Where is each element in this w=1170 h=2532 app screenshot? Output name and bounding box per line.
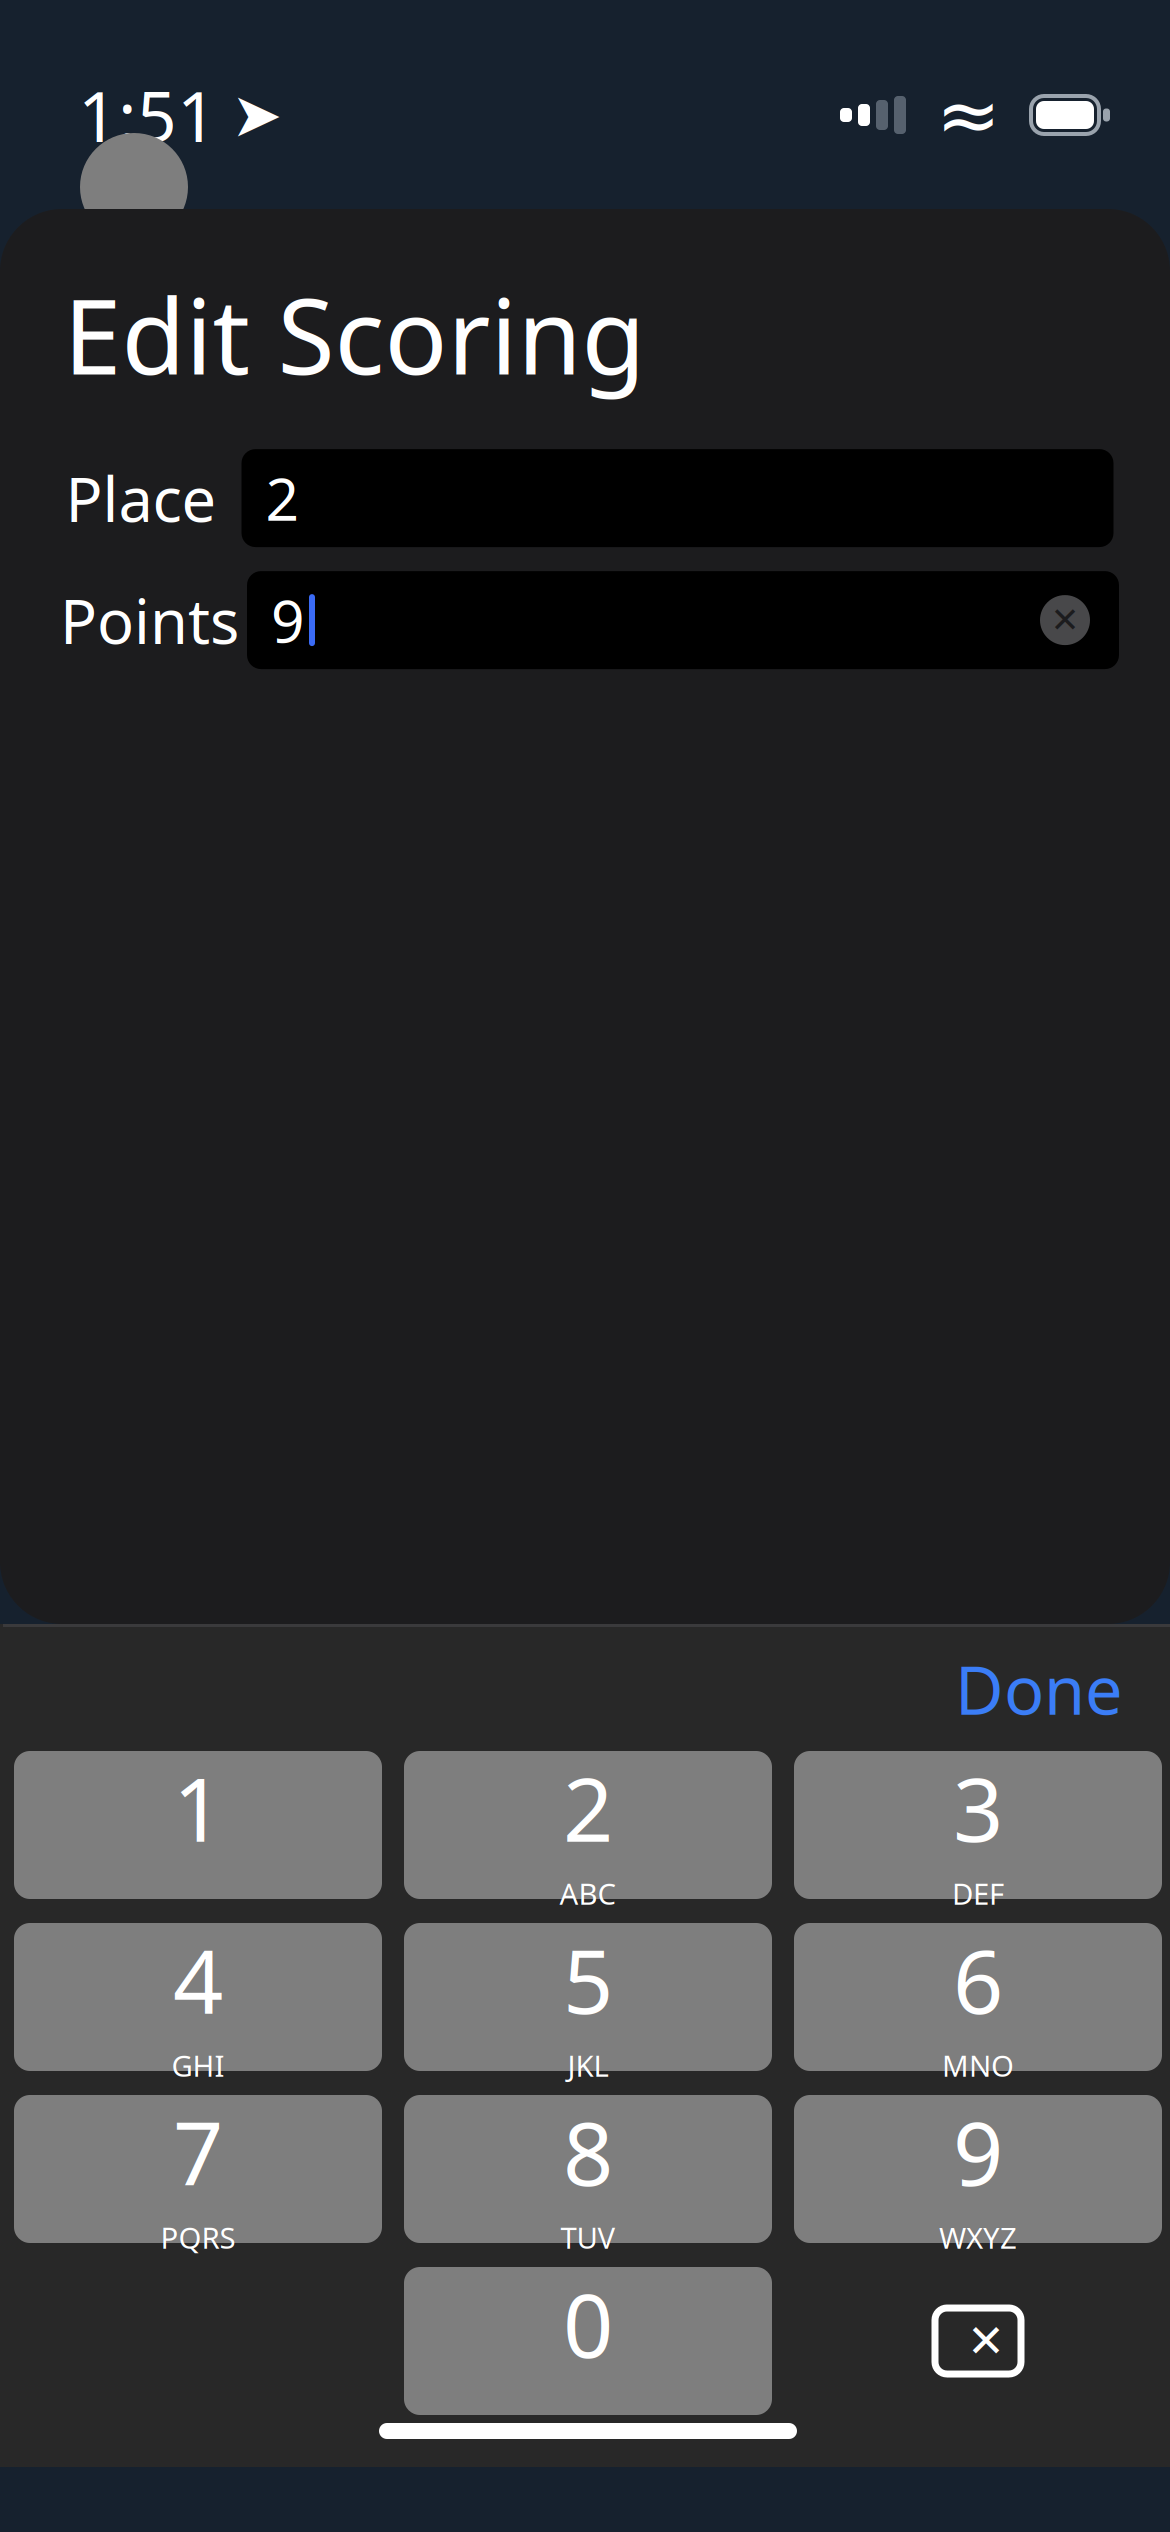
staticText: 1 bbox=[173, 1749, 223, 1866]
button[interactable]: 0 bbox=[404, 2267, 772, 2415]
staticText: ≈ bbox=[936, 71, 1001, 159]
button[interactable]: 6 bbox=[794, 1923, 1162, 2071]
button[interactable]: 9 bbox=[794, 2095, 1162, 2243]
staticText: 7 bbox=[173, 2093, 223, 2210]
button[interactable]: 4 bbox=[14, 1923, 382, 2071]
staticText: JKL bbox=[567, 2046, 608, 2085]
staticText: PQRS bbox=[160, 2218, 235, 2257]
button[interactable]: 7 bbox=[14, 2095, 382, 2243]
staticText: 2 bbox=[265, 459, 299, 537]
staticText: Done bbox=[955, 1645, 1123, 1733]
button[interactable]: 5 bbox=[404, 1923, 772, 2071]
staticText: GHI bbox=[171, 2046, 224, 2085]
staticText: 0 bbox=[563, 2265, 613, 2382]
staticText: Place bbox=[65, 457, 216, 539]
button[interactable]: 2 bbox=[404, 1751, 772, 1899]
staticText: WXYZ bbox=[939, 2218, 1017, 2257]
staticText: ✕ bbox=[1050, 600, 1079, 640]
staticText: 2 bbox=[563, 1749, 613, 1866]
staticText: 8 bbox=[563, 2093, 613, 2210]
staticText: 6 bbox=[953, 1921, 1003, 2038]
staticText: Edit Scoring bbox=[63, 265, 645, 403]
button[interactable]: Done bbox=[927, 1627, 1151, 1751]
staticText: 5 bbox=[563, 1921, 613, 2038]
staticText: ABC bbox=[559, 1874, 616, 1913]
button[interactable]: Clear text bbox=[1033, 588, 1097, 652]
button[interactable]: 1 bbox=[14, 1751, 382, 1899]
staticText: 9 bbox=[271, 581, 305, 659]
staticText: MNO bbox=[942, 2046, 1014, 2085]
button[interactable]: Delete bbox=[794, 2267, 1162, 2415]
staticText: Points bbox=[60, 579, 239, 661]
staticText: 9 bbox=[953, 2093, 1003, 2210]
button[interactable]: 8 bbox=[404, 2095, 772, 2243]
staticText: 1:51 bbox=[78, 69, 217, 161]
button[interactable]: 2 bbox=[241, 449, 1113, 547]
staticText: 4 bbox=[173, 1921, 223, 2038]
button[interactable]: 3 bbox=[794, 1751, 1162, 1899]
staticText: ➤ bbox=[231, 80, 282, 150]
staticText: TUV bbox=[560, 2218, 615, 2257]
button[interactable]: 9 bbox=[247, 571, 1119, 669]
staticText: DEF bbox=[952, 1874, 1004, 1913]
staticText: 3 bbox=[953, 1749, 1003, 1866]
staticText: ✕ bbox=[967, 2315, 1005, 2367]
